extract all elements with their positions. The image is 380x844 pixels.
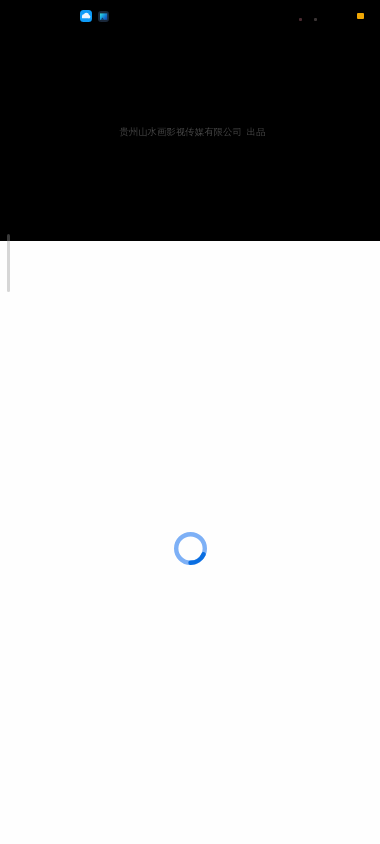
other: Mobile signal [299,18,302,21]
other: Wi-Fi [314,18,317,21]
other: Battery [357,13,364,19]
staticText: 贵州山水画影视传媒有限公司 出品 [119,125,266,138]
button[interactable]: Cloud sync notification [0,0,380,241]
other: Cloud sync notification [80,10,92,22]
other: Gallery notification [98,11,109,22]
other: Loading [174,532,207,565]
